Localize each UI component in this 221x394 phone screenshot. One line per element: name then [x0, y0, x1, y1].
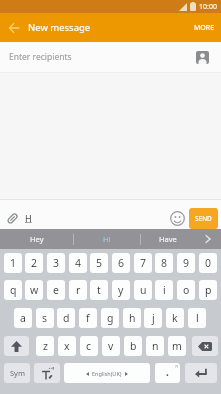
button[interactable]: 9 — [177, 253, 195, 273]
button[interactable]: r — [69, 280, 87, 300]
staticText: SEND — [195, 214, 212, 223]
button[interactable]: 1 — [4, 253, 22, 273]
button[interactable]: v — [102, 336, 120, 356]
staticText: x — [64, 339, 70, 353]
button[interactable]: 2 — [25, 253, 43, 273]
staticText: 2 — [31, 256, 38, 270]
button[interactable]: . — [155, 363, 180, 383]
staticText: y — [118, 283, 124, 297]
staticText: s — [42, 311, 48, 325]
button[interactable]: Have — [141, 229, 195, 249]
button[interactable]: q — [4, 280, 22, 300]
button[interactable]: c — [80, 336, 98, 356]
button[interactable] — [6, 212, 19, 225]
button[interactable]: 0 — [199, 253, 217, 273]
staticText: c — [86, 339, 92, 353]
button[interactable] — [34, 363, 60, 383]
staticText: w — [30, 283, 39, 297]
button[interactable]: MORE — [188, 13, 221, 42]
staticText: Sym — [10, 368, 25, 378]
button[interactable]: a — [14, 308, 32, 328]
button[interactable]: w — [25, 280, 43, 300]
staticText: 10:00 — [199, 2, 217, 12]
staticText: Enter recipients — [9, 51, 72, 63]
staticText: d — [63, 311, 70, 325]
staticText: a — [20, 311, 26, 325]
button[interactable]: y — [112, 280, 130, 300]
button[interactable]: g — [101, 308, 119, 328]
button[interactable] — [195, 229, 221, 249]
staticText: n — [152, 339, 159, 353]
staticText: k — [172, 311, 178, 325]
staticText: 4 — [75, 256, 82, 270]
staticText: e — [53, 283, 59, 297]
staticText: . — [166, 365, 169, 379]
staticText: 0 — [205, 256, 212, 270]
staticText: g — [107, 311, 114, 325]
staticText: t — [97, 283, 101, 297]
staticText: f — [86, 311, 90, 325]
staticText: MORE — [194, 23, 215, 33]
staticText: j — [152, 311, 155, 325]
button[interactable] — [196, 51, 209, 64]
button[interactable]: u — [134, 280, 152, 300]
button[interactable]: j — [144, 308, 162, 328]
button[interactable]: x — [58, 336, 76, 356]
staticText: z — [43, 339, 48, 353]
staticText: m — [172, 339, 182, 353]
button[interactable]: s — [36, 308, 54, 328]
staticText: 9 — [183, 256, 190, 270]
staticText: Have — [159, 234, 177, 244]
button[interactable]: 7 — [134, 253, 152, 273]
staticText: 8 — [161, 256, 168, 270]
button[interactable] — [4, 336, 29, 356]
staticText: 3 — [53, 256, 60, 270]
button[interactable]: z — [36, 336, 54, 356]
button[interactable]: l — [188, 308, 206, 328]
button[interactable]: 3 — [47, 253, 65, 273]
button[interactable] — [185, 363, 217, 383]
staticText: h — [129, 311, 136, 325]
staticText: ?! — [175, 364, 178, 369]
button[interactable]: t — [90, 280, 108, 300]
button[interactable]: b — [124, 336, 142, 356]
button[interactable]: f — [79, 308, 97, 328]
button[interactable] — [169, 210, 185, 226]
staticText: p — [205, 283, 212, 297]
button[interactable]: English(UK) — [64, 363, 150, 383]
button[interactable]: Hi — [74, 229, 140, 249]
button[interactable] — [0, 13, 28, 42]
staticText: Hi — [103, 234, 111, 244]
button[interactable]: 4 — [69, 253, 87, 273]
staticText: u — [140, 283, 147, 297]
button[interactable]: m — [168, 336, 186, 356]
button[interactable]: k — [166, 308, 184, 328]
staticText: 7 — [140, 256, 147, 270]
staticText: o — [183, 283, 190, 297]
button[interactable]: Sym — [4, 363, 30, 383]
staticText: H — [25, 212, 32, 224]
staticText: i — [163, 283, 166, 297]
button[interactable]: o — [177, 280, 195, 300]
button[interactable]: SEND — [189, 208, 218, 229]
button[interactable]: 6 — [112, 253, 130, 273]
button[interactable]: 5 — [90, 253, 108, 273]
button[interactable]: p — [199, 280, 217, 300]
button[interactable]: n — [146, 336, 164, 356]
button[interactable]: Hey — [0, 229, 73, 249]
button[interactable]: h — [123, 308, 141, 328]
staticText: v — [108, 339, 114, 353]
button[interactable]: e — [47, 280, 65, 300]
button[interactable]: d — [57, 308, 75, 328]
button[interactable] — [192, 336, 218, 356]
staticText: 6 — [118, 256, 125, 270]
staticText: r — [76, 283, 81, 297]
staticText: Hey — [30, 234, 44, 244]
staticText: l — [196, 311, 199, 325]
staticText: b — [130, 339, 137, 353]
staticText: 5 — [96, 256, 103, 270]
button[interactable]: 8 — [155, 253, 173, 273]
button[interactable]: i — [155, 280, 173, 300]
staticText: New message — [28, 21, 91, 34]
staticText: 1 — [10, 256, 17, 270]
